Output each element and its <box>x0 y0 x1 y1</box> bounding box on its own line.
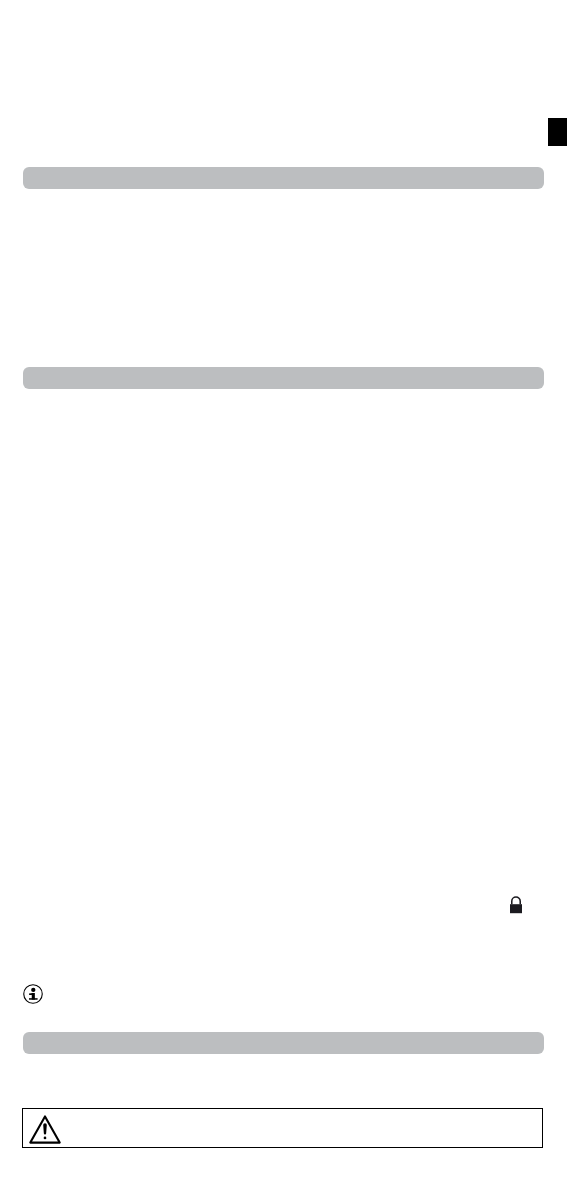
button[interactable] <box>22 1108 543 1148</box>
button[interactable]: Secure <box>508 895 526 915</box>
button[interactable]: Information <box>23 984 43 1004</box>
button[interactable] <box>23 167 544 189</box>
button[interactable] <box>23 1032 544 1054</box>
button[interactable] <box>23 367 544 389</box>
